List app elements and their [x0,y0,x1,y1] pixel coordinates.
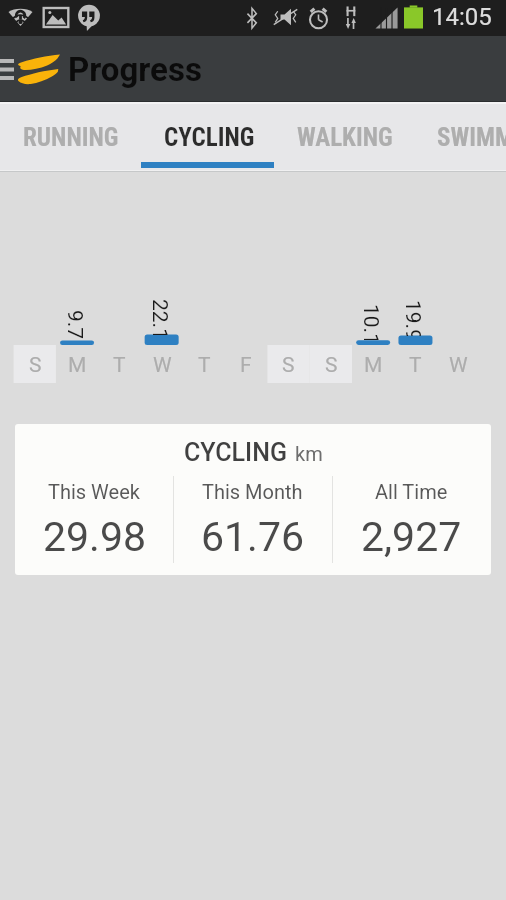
staticText: S [325,353,338,378]
staticText: 29.98 [43,513,146,561]
staticText: RUNNING [23,123,119,152]
staticText: Progress [68,50,202,89]
staticText: CYCLING [164,123,255,152]
button[interactable]: CYCLING [141,104,274,170]
staticText: This Month [202,480,303,503]
staticText: W [153,353,172,378]
staticText: 19.9 [405,300,425,336]
staticText: M [364,353,383,378]
staticText: WALKING [297,123,393,152]
staticText: T [409,353,422,378]
staticText: 9.7 [67,310,87,340]
staticText: T [198,353,211,378]
staticText: All Time [375,480,448,503]
staticText: 22.1 [152,299,172,335]
button[interactable]: SWIMMING [414,104,506,170]
staticText: 14:05 [432,3,492,31]
button[interactable]: RUNNING [0,104,141,170]
button[interactable]: Open navigation drawer [0,43,16,95]
staticText: S [29,353,42,378]
staticText: M [68,353,87,378]
staticText: S [282,353,295,378]
staticText: T [113,353,126,378]
button[interactable]: CYCLING [15,424,491,575]
staticText: 61.76 [201,513,304,561]
staticText: 10.1 [363,304,383,340]
button[interactable]: WALKING [274,104,414,170]
staticText: 2,927 [361,513,462,561]
staticText: F [240,353,252,378]
staticText: This Week [48,480,140,503]
staticText: km [295,442,323,465]
staticText: W [449,353,468,378]
staticText: CYCLING [184,438,287,467]
staticText: SWIMMING [437,123,506,152]
